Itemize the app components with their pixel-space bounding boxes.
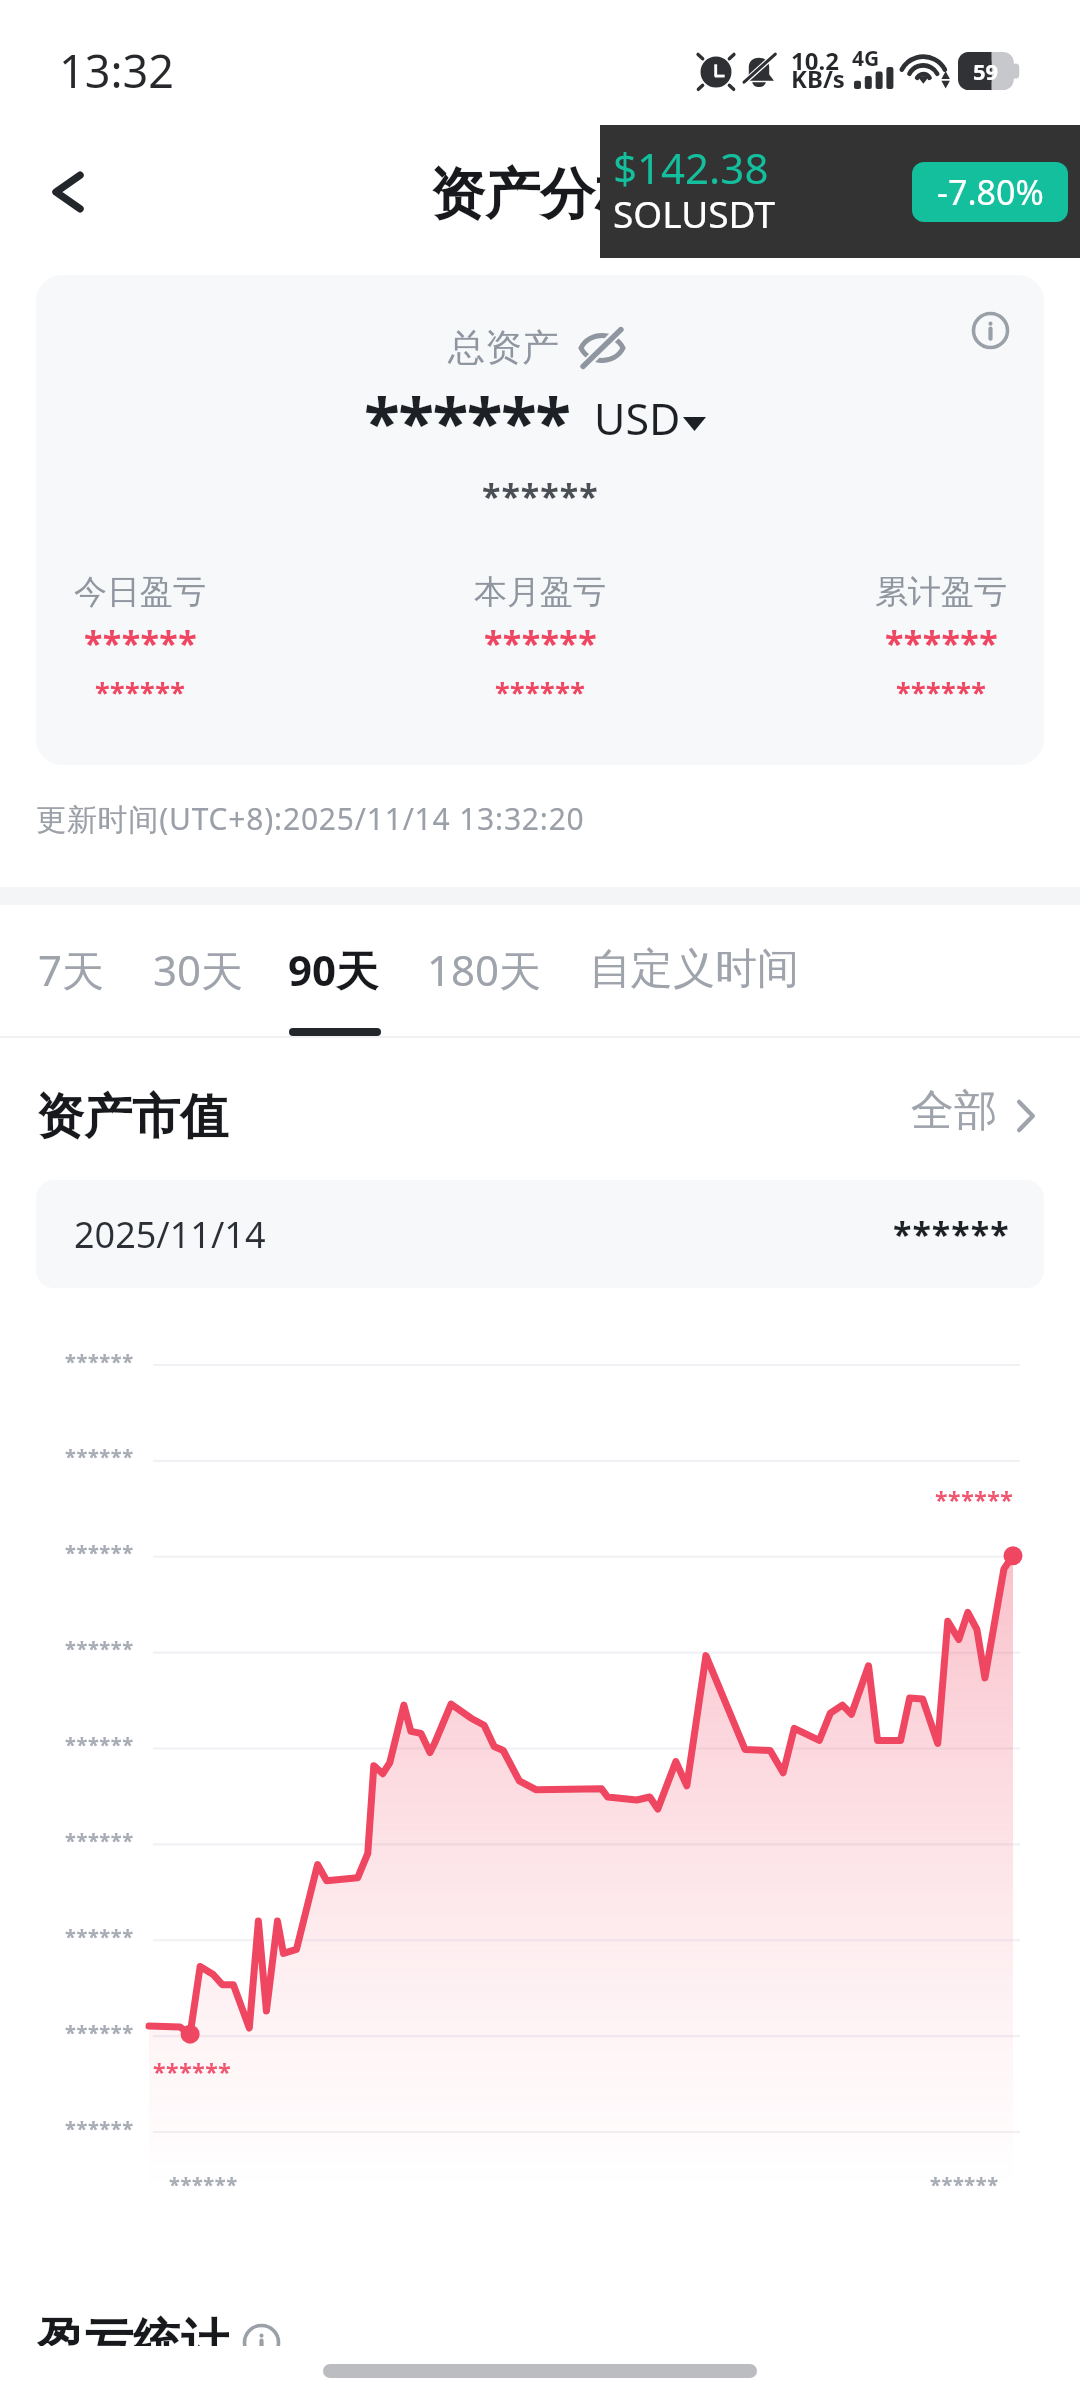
staticText: ****** (364, 376, 570, 466)
staticText: ****** (65, 1348, 134, 1375)
staticText: 13:32 (59, 40, 175, 101)
staticText: ****** (482, 473, 599, 519)
staticText: ****** (65, 1923, 134, 1950)
staticText: USD (594, 389, 681, 439)
button[interactable]: 盈亏统计 (37, 2312, 280, 2346)
button[interactable]: 180天 (427, 941, 542, 998)
staticText: ****** (484, 620, 597, 666)
staticText: ****** (893, 1211, 1010, 1257)
staticText: 总资产 (448, 324, 559, 371)
staticText: 7天 (38, 941, 105, 998)
staticText: 2025/11/14 (74, 1210, 266, 1259)
staticText: ****** (95, 674, 186, 711)
staticText: ****** (930, 2171, 999, 2198)
other: Info (243, 2324, 280, 2346)
staticText: ****** (65, 1443, 134, 1470)
staticText: ****** (169, 2171, 238, 2198)
button[interactable]: 30天 (153, 941, 244, 998)
staticText: ****** (885, 620, 998, 666)
staticText: 资产分析 (430, 160, 650, 229)
staticText: KB/s (791, 62, 845, 95)
staticText: ****** (65, 2115, 134, 2142)
staticText: ****** (153, 2056, 232, 2087)
staticText: ****** (65, 1731, 134, 1758)
staticText: ****** (65, 1635, 134, 1662)
staticText: 全部 (911, 1084, 997, 1138)
staticText: -7.80% (937, 169, 1044, 215)
staticText: ****** (495, 674, 586, 711)
staticText: 180天 (427, 941, 542, 998)
staticText: 更新时间(UTC+8):2025/11/14 13:32:20 (36, 798, 585, 839)
button[interactable]: Toggle visibility (577, 326, 627, 370)
staticText: ****** (65, 1539, 134, 1566)
staticText: 资产市值 (36, 1087, 228, 1147)
staticText: SOLUSDT (613, 188, 776, 238)
staticText: 10.2 (791, 44, 839, 77)
button[interactable]: 2025/11/14 (36, 1180, 1044, 1288)
staticText: 盈亏统计 (37, 2312, 229, 2346)
button[interactable]: 7天 (38, 941, 105, 998)
button[interactable]: -7.80% (912, 162, 1068, 222)
staticText: 自定义时间 (589, 943, 799, 996)
staticText: ****** (896, 674, 987, 711)
staticText: 30天 (153, 941, 244, 998)
staticText: 本月盈亏 (474, 571, 606, 613)
staticText: 4G (852, 44, 880, 73)
button[interactable]: $142.38 (600, 125, 1080, 258)
button[interactable]: Currency USD (590, 395, 718, 445)
staticText: 累计盈亏 (875, 571, 1007, 613)
button[interactable]: Info (972, 312, 1009, 349)
staticText: 59 (973, 56, 999, 86)
staticText: ****** (65, 2019, 134, 2046)
staticText: ****** (935, 1484, 1014, 1515)
staticText: 90天 (288, 941, 379, 998)
button[interactable]: 全部 (911, 1084, 1035, 1138)
staticText: $142.38 (613, 139, 769, 196)
button[interactable]: 自定义时间 (589, 943, 799, 996)
button[interactable]: 90天 (288, 941, 379, 998)
button[interactable]: Back (38, 162, 98, 222)
staticText: ****** (65, 1827, 134, 1854)
staticText: 今日盈亏 (74, 571, 206, 613)
staticText: ****** (84, 620, 197, 666)
